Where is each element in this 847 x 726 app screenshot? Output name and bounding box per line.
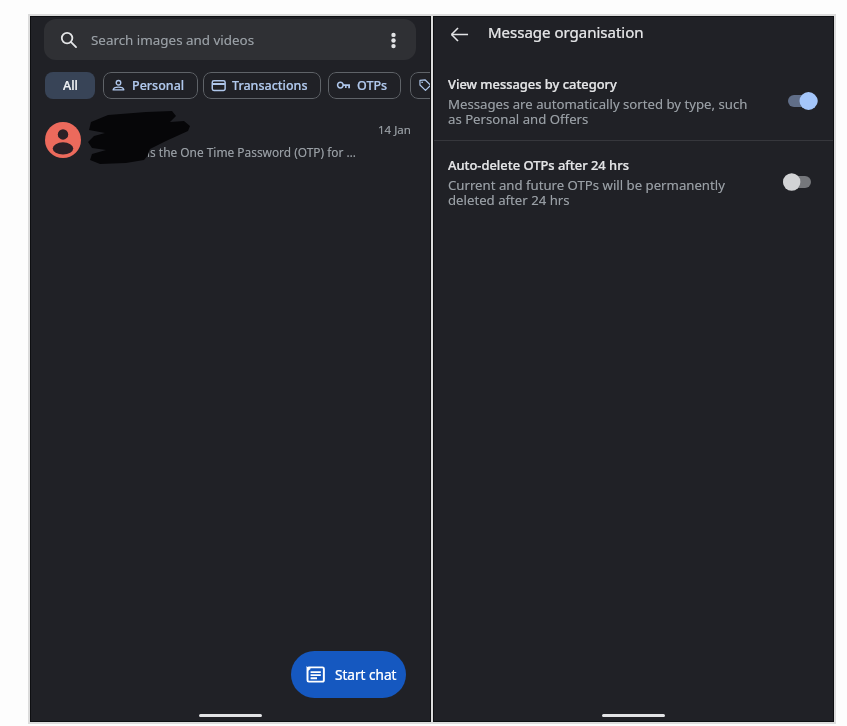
button[interactable]: OTPs bbox=[328, 72, 401, 99]
staticText: All bbox=[63, 77, 78, 94]
button[interactable]: Start chat bbox=[291, 651, 406, 698]
button[interactable]: More options bbox=[376, 23, 410, 57]
button[interactable]: View messages by category bbox=[434, 62, 833, 140]
staticText: Search images and videos bbox=[91, 31, 255, 49]
staticText: View messages by category bbox=[448, 75, 617, 93]
staticText: 14 Jan bbox=[378, 122, 411, 138]
button[interactable]: is the One Time Password (OTP) for … bbox=[31, 109, 430, 179]
button[interactable]: Search images and videos bbox=[44, 19, 416, 60]
staticText: Message organisation bbox=[488, 22, 644, 42]
staticText: Personal bbox=[132, 77, 185, 94]
staticText: Current and future OTPs will be permanen… bbox=[448, 176, 725, 207]
staticText: Start chat bbox=[335, 665, 397, 684]
button[interactable]: Transactions bbox=[203, 72, 321, 99]
staticText: OTPs bbox=[357, 77, 388, 94]
staticText: is the One Time Password (OTP) for … bbox=[147, 144, 356, 160]
button[interactable]: Personal bbox=[103, 72, 198, 99]
staticText: Transactions bbox=[232, 77, 308, 94]
button[interactable]: Off bbox=[784, 169, 824, 195]
staticText: Auto-delete OTPs after 24 hrs bbox=[448, 156, 629, 174]
button[interactable]: Auto-delete OTPs after 24 hrs bbox=[434, 143, 833, 221]
staticText: Messages are automatically sorted by typ… bbox=[448, 95, 748, 126]
button[interactable]: Back bbox=[441, 17, 477, 52]
button[interactable]: On bbox=[784, 88, 824, 114]
button[interactable]: Offers bbox=[410, 72, 430, 99]
button[interactable]: All bbox=[45, 72, 95, 99]
